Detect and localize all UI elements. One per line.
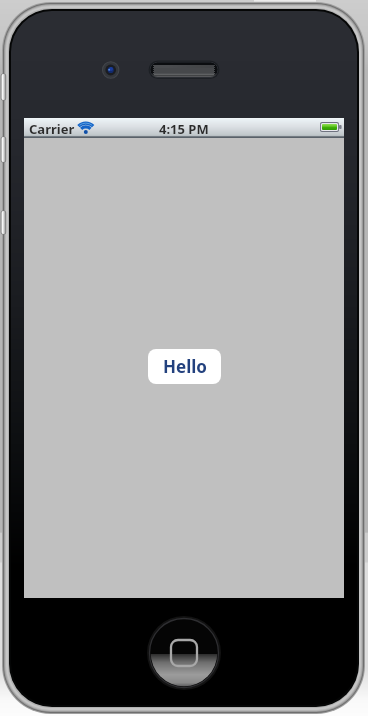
staticText: 4:15 PM (159, 120, 209, 135)
button[interactable]: Hello (148, 349, 221, 384)
staticText: Hello (163, 355, 207, 378)
staticText: Carrier (29, 120, 75, 135)
